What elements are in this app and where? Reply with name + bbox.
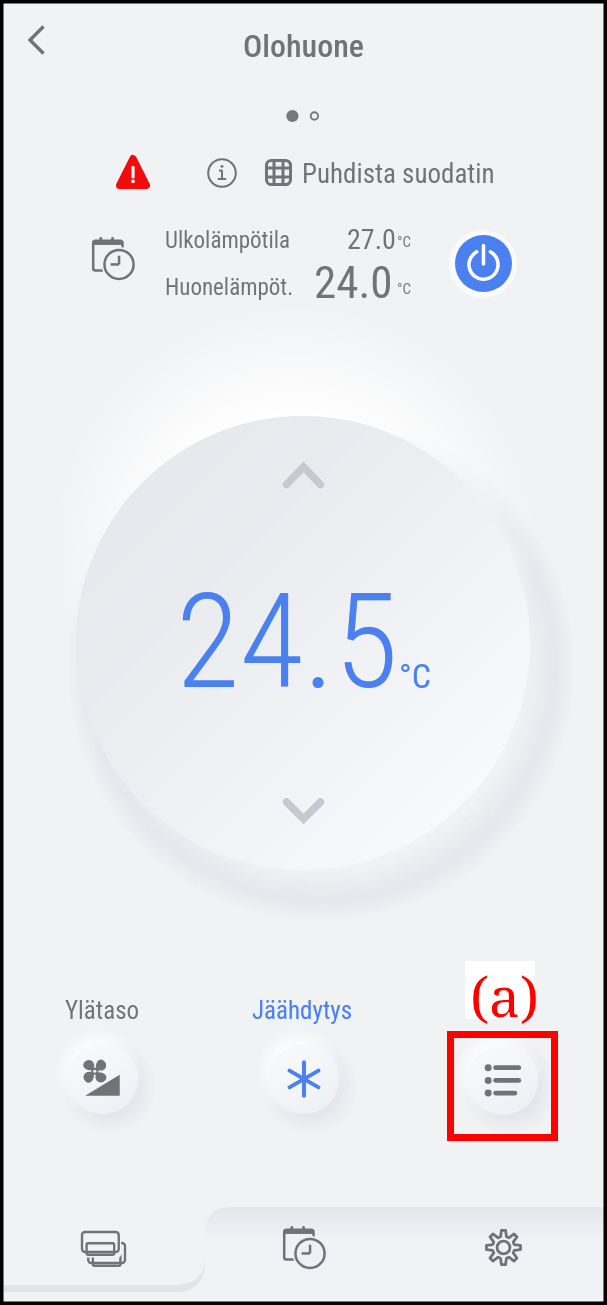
button[interactable]: Indoor units: [63, 1213, 143, 1281]
staticText: (a): [470, 958, 540, 1033]
button[interactable]: Power: [455, 235, 512, 292]
staticText: 24.5: [176, 565, 399, 719]
staticText: Ylätaso: [65, 996, 140, 1025]
button[interactable]: Warning: [116, 155, 150, 189]
staticText: Jäähdytys: [252, 996, 353, 1025]
button[interactable]: Back: [22, 23, 56, 57]
button[interactable]: Info: [207, 158, 237, 188]
staticText: Ulkolämpötila: [165, 227, 290, 254]
staticText: 24.0: [314, 256, 393, 309]
staticText: Puhdista suodatin: [302, 158, 495, 190]
button[interactable]: More options: [468, 1045, 538, 1115]
staticText: Huonelämpöt.: [165, 274, 294, 301]
button[interactable]: Schedule: [264, 1213, 344, 1281]
button[interactable]: Settings: [463, 1213, 543, 1281]
staticText: 27.0: [347, 223, 396, 256]
staticText: Olohuone: [243, 27, 365, 65]
button[interactable]: Cooling mode: [269, 1044, 339, 1114]
button[interactable]: Fan speed: [68, 1044, 138, 1114]
staticText: °C: [397, 280, 412, 298]
staticText: °C: [397, 233, 412, 251]
staticText: °C: [399, 656, 431, 696]
